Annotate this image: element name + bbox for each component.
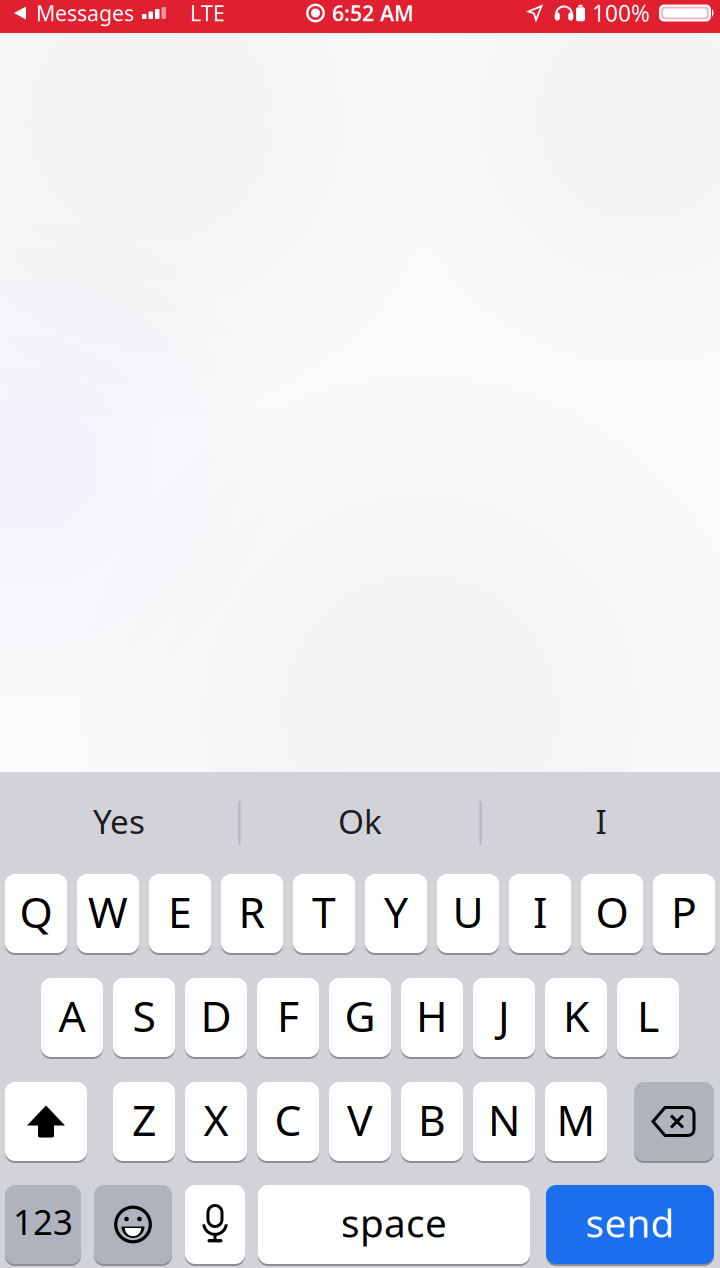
button[interactable]: W [77,874,139,953]
button[interactable]: Emoji [94,1185,172,1264]
button[interactable]: Dictate [185,1185,245,1264]
button[interactable]: Yes [0,772,238,874]
button[interactable]: B [401,1082,463,1161]
staticText: send [585,1197,674,1248]
button[interactable]: space [258,1185,530,1264]
button[interactable]: V [329,1082,391,1161]
button[interactable]: Y [365,874,427,953]
staticText: Q [19,883,52,940]
button[interactable]: D [185,978,247,1057]
staticText: F [277,987,299,1044]
button[interactable]: Delete [634,1082,714,1161]
staticText: K [563,987,589,1044]
staticText: Z [132,1091,156,1148]
staticText: S [132,987,155,1044]
button[interactable]: R [221,874,283,953]
button[interactable]: X [185,1082,247,1161]
staticText: W [88,883,128,940]
staticText: U [452,883,483,940]
staticText: L [637,987,659,1044]
staticText: Messages [36,0,134,27]
staticText: B [418,1091,446,1148]
staticText: T [312,883,336,940]
staticText: Yes [93,799,145,843]
button[interactable]: M [545,1082,607,1161]
staticText: space [341,1197,447,1248]
button[interactable]: S [113,978,175,1057]
staticText: I [595,799,606,843]
staticText: 100% [592,0,650,28]
staticText: I [533,883,547,940]
staticText: Y [384,883,408,940]
button[interactable]: P [653,874,715,953]
button[interactable]: O [581,874,643,953]
staticText: M [556,1091,595,1148]
staticText: R [238,883,265,940]
button[interactable]: Shift [5,1082,87,1161]
button[interactable]: Z [113,1082,175,1161]
button[interactable]: N [473,1082,535,1161]
button[interactable]: T [293,874,355,953]
staticText: H [416,987,448,1044]
staticText: N [488,1091,520,1148]
button[interactable]: Numbers [5,1185,81,1264]
button[interactable]: Ok [240,772,479,874]
staticText: V [347,1091,373,1148]
button[interactable]: I [509,874,571,953]
button[interactable]: F [257,978,319,1057]
staticText: E [168,883,192,940]
button[interactable]: H [401,978,463,1057]
button[interactable]: C [257,1082,319,1161]
staticText: LTE [190,0,225,27]
staticText: P [671,883,697,940]
button[interactable]: J [473,978,535,1057]
button[interactable]: Q [5,874,67,953]
button[interactable]: U [437,874,499,953]
staticText: J [498,987,510,1044]
button[interactable]: E [149,874,211,953]
button[interactable]: Back to Messages [0,0,134,27]
staticText: A [58,987,85,1044]
button[interactable]: L [617,978,679,1057]
staticText: X [203,1091,228,1148]
staticText: C [274,1091,301,1148]
button[interactable]: I [481,772,720,874]
button[interactable]: send [546,1185,714,1264]
button[interactable]: K [545,978,607,1057]
staticText: O [595,883,628,940]
staticText: Ok [338,799,382,843]
button[interactable]: G [329,978,391,1057]
staticText: G [344,987,375,1044]
staticText: D [200,987,231,1044]
staticText: 6:52 AM [332,0,414,27]
staticText: 123 [13,1198,73,1244]
button[interactable]: A [41,978,103,1057]
